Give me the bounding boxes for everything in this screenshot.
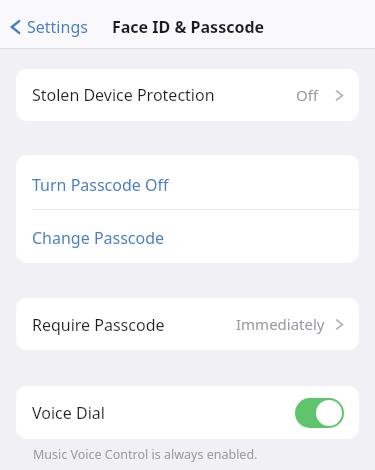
staticText: Stolen Device Protection	[32, 84, 215, 106]
button[interactable]: Voice Dial toggle	[295, 398, 344, 428]
staticText: Off	[296, 85, 319, 105]
staticText: Require Passcode	[32, 314, 165, 336]
staticText: Voice Dial	[32, 402, 105, 424]
staticText: Music Voice Control is always enabled.	[33, 446, 258, 463]
button[interactable]: Turn Passcode Off	[16, 155, 359, 209]
button[interactable]: Stolen Device Protection	[16, 69, 359, 121]
staticText: Settings	[27, 16, 88, 38]
staticText: Face ID & Passcode	[112, 16, 265, 38]
staticText: Change Passcode	[32, 227, 165, 249]
button[interactable]: Require Passcode	[16, 298, 359, 350]
staticText: Immediately	[236, 314, 325, 334]
staticText: Turn Passcode Off	[32, 174, 169, 196]
button[interactable]: Change Passcode	[16, 209, 359, 263]
button[interactable]: Back to Settings	[7, 11, 91, 43]
